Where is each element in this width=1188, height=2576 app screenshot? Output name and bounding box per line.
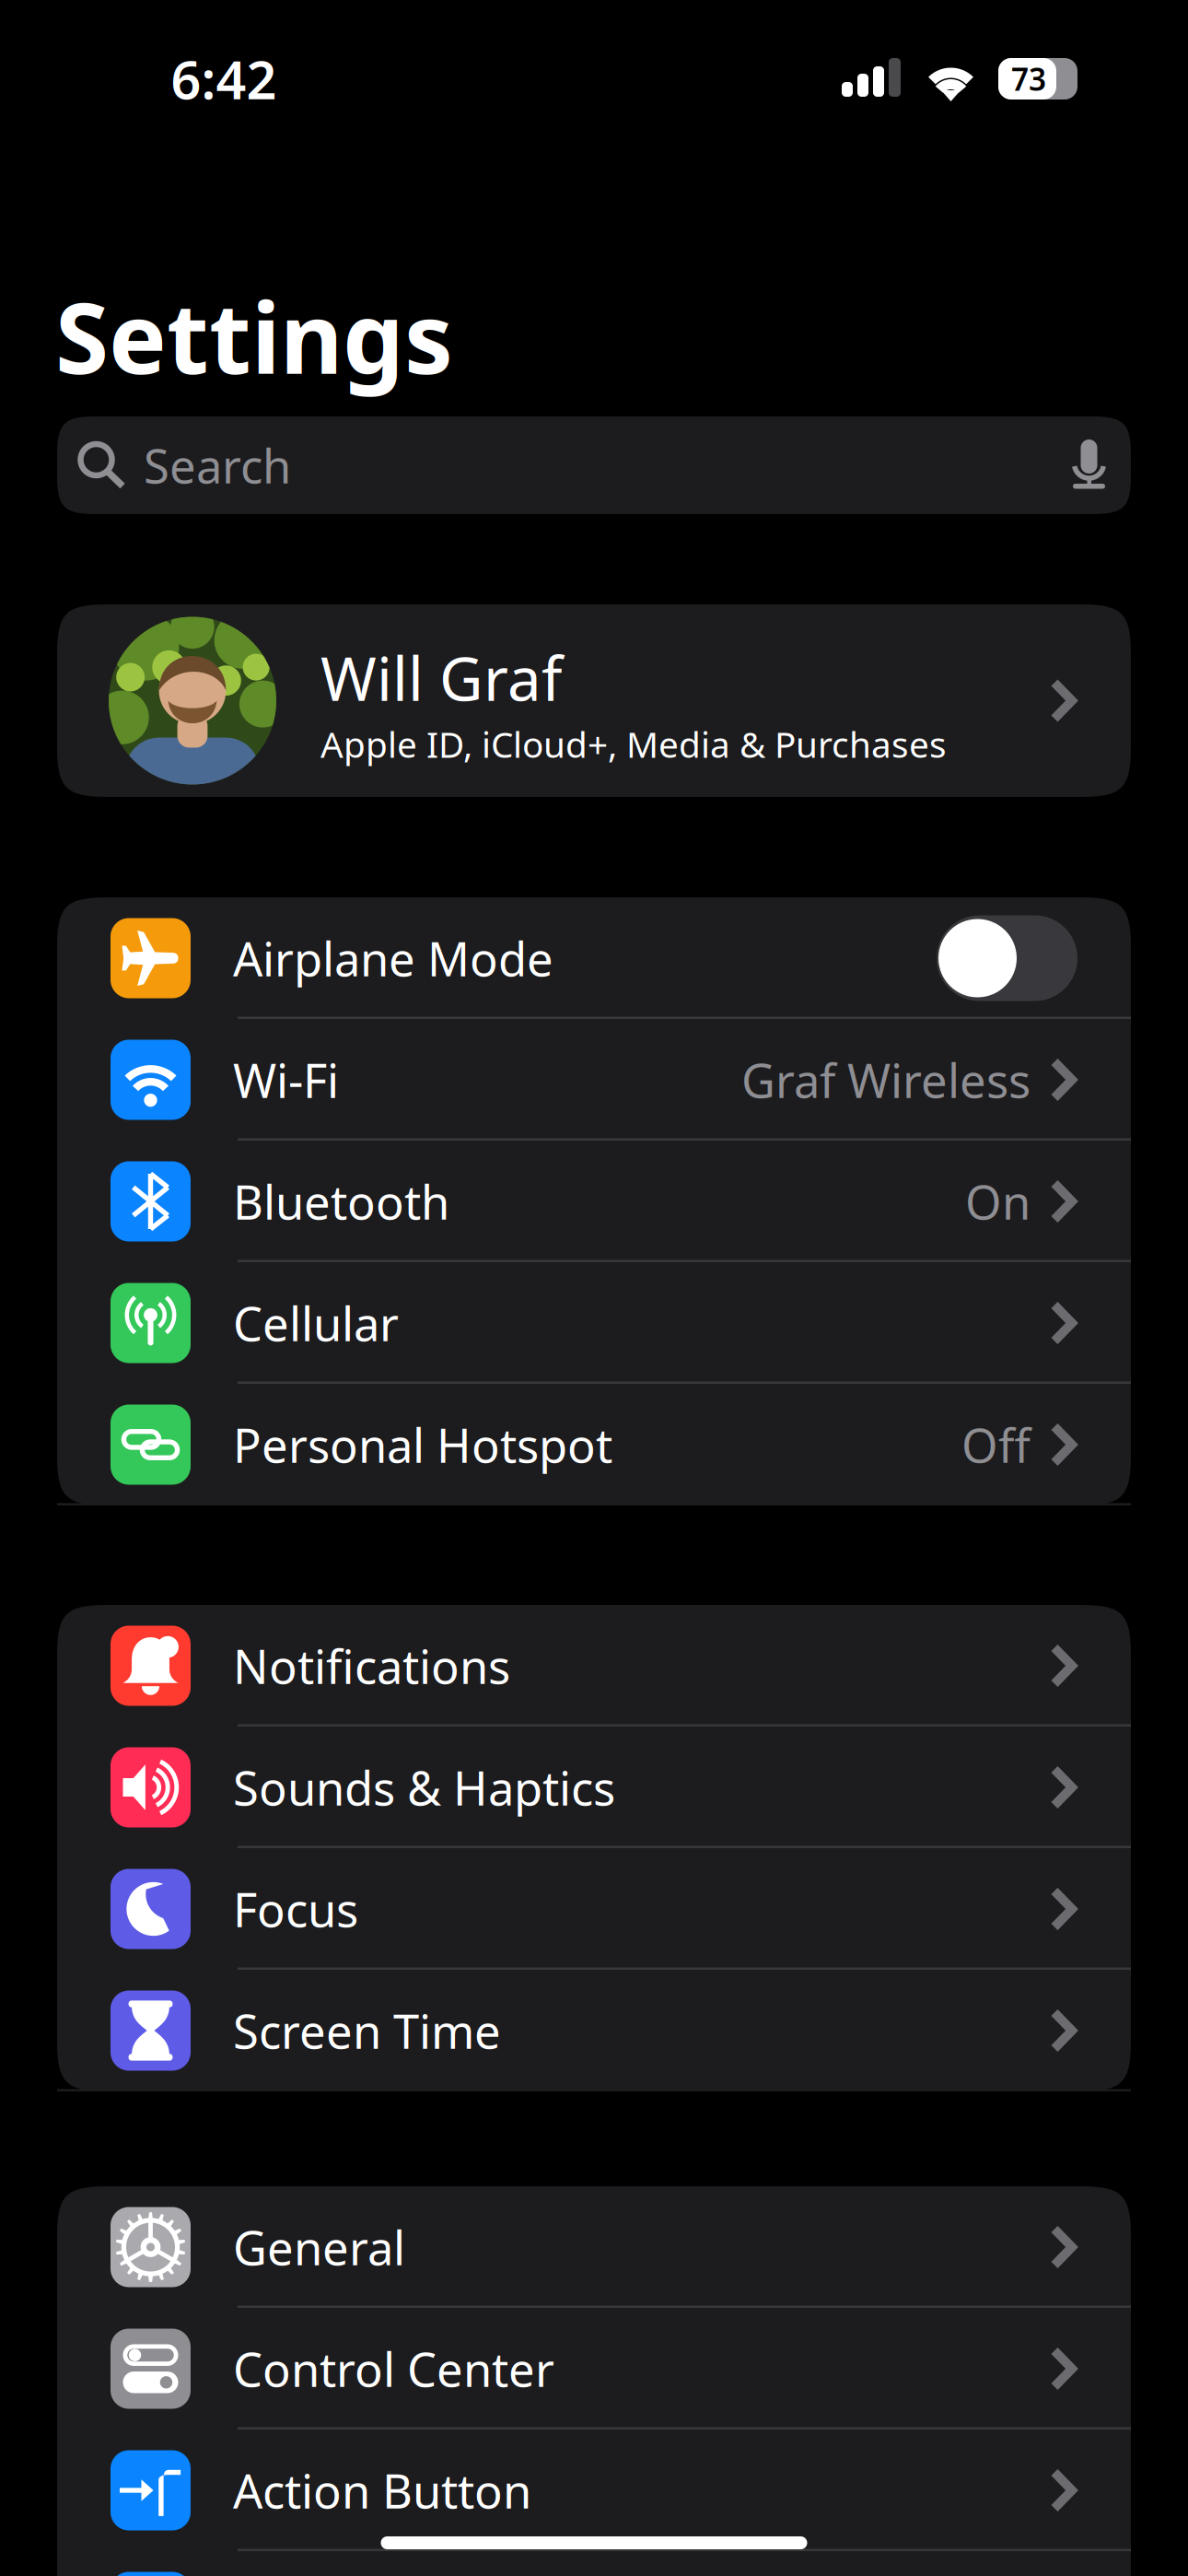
staticText: Settings xyxy=(55,272,453,401)
staticText: Personal Hotspot xyxy=(233,1414,612,1476)
staticText: Notifications xyxy=(233,1635,510,1697)
button[interactable]: Airplane Mode xyxy=(57,897,1131,1019)
button[interactable]: Search xyxy=(0,416,1188,514)
button[interactable]: Screen Time xyxy=(57,1970,1131,2091)
staticText: Wi-Fi xyxy=(233,1049,339,1111)
staticText: Will Graf xyxy=(320,638,562,718)
button[interactable]: Display & Brightness xyxy=(57,2551,1131,2576)
button[interactable]: Wi-Fi xyxy=(57,1019,1131,1141)
staticText: Action Button xyxy=(233,2459,531,2521)
button[interactable]: Bluetooth xyxy=(57,1141,1131,1262)
staticText: Screen Time xyxy=(233,2000,501,2062)
staticText: Sounds & Haptics xyxy=(233,1756,615,1818)
button[interactable]: Cellular xyxy=(57,1262,1131,1384)
staticText: Focus xyxy=(233,1878,358,1940)
staticText: General xyxy=(233,2216,405,2278)
staticText: Airplane Mode xyxy=(233,927,553,989)
button[interactable]: Focus xyxy=(57,1848,1131,1970)
button[interactable]: General xyxy=(57,2186,1131,2308)
staticText: Apple ID, iCloud+, Media & Purchases xyxy=(320,720,947,768)
staticText: Bluetooth xyxy=(233,1170,449,1232)
staticText: Control Center xyxy=(233,2338,554,2400)
staticText: 6:42 xyxy=(171,44,277,114)
staticText: Cellular xyxy=(233,1292,399,1354)
staticText: Search xyxy=(144,434,291,496)
staticText: Off xyxy=(961,1414,1031,1476)
button[interactable]: Will Graf xyxy=(0,604,1188,797)
button[interactable]: Action Button xyxy=(57,2430,1131,2551)
staticText: Graf Wireless xyxy=(741,1049,1031,1111)
button[interactable]: Control Center xyxy=(57,2308,1131,2430)
staticText: On xyxy=(965,1170,1031,1232)
button[interactable]: Sounds & Haptics xyxy=(57,1727,1131,1848)
button[interactable]: Notifications xyxy=(57,1605,1131,1727)
button[interactable]: Personal Hotspot xyxy=(57,1384,1131,1505)
staticText: 73 xyxy=(1011,58,1046,99)
